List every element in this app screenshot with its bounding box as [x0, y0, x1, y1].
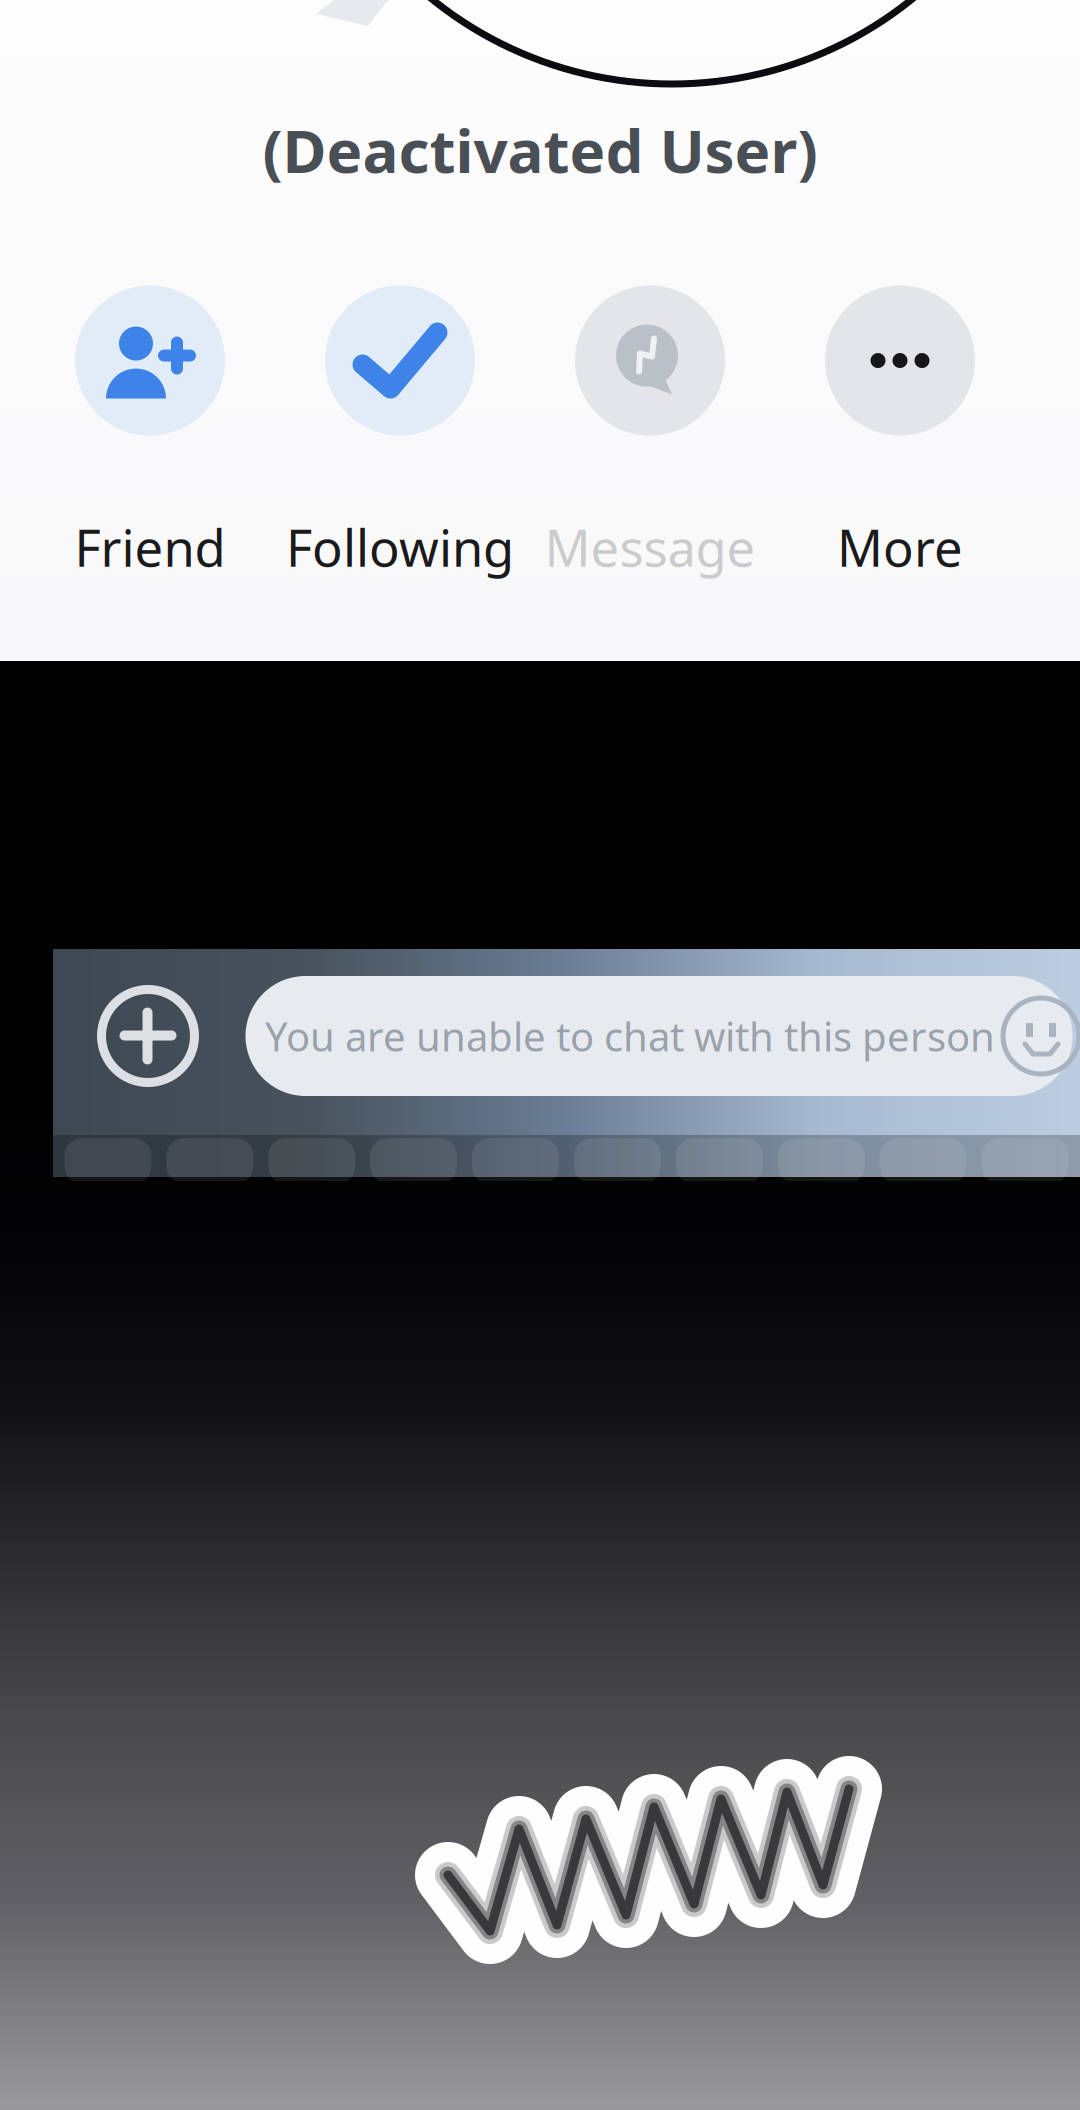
- button[interactable]: Message: [525, 318, 775, 563]
- staticText: Friend: [74, 513, 225, 581]
- button[interactable]: More: [775, 318, 1025, 563]
- button[interactable]: Add Friend: [25, 318, 275, 563]
- staticText: (Deactivated User): [262, 110, 817, 190]
- staticText: You are unable to chat with this person: [265, 1009, 995, 1062]
- staticText: More: [837, 513, 963, 581]
- button[interactable]: Following: [275, 318, 525, 563]
- staticText: Message: [544, 513, 755, 581]
- staticText: Following: [286, 513, 514, 581]
